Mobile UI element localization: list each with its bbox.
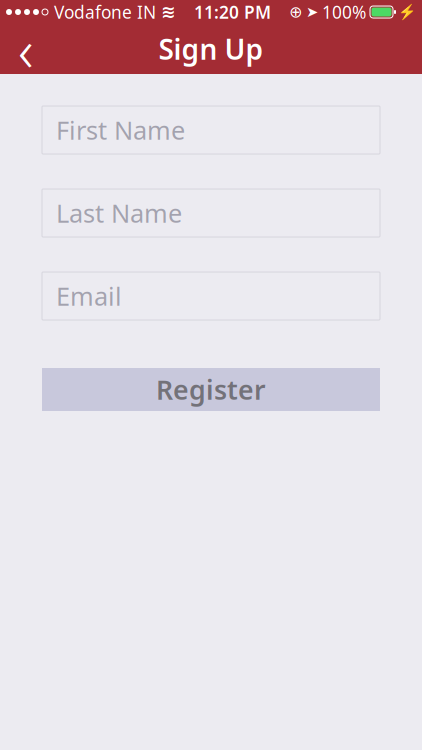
staticText: ➤ xyxy=(306,4,318,20)
staticText: ⊕ xyxy=(289,3,302,21)
staticText: 100% xyxy=(322,0,366,23)
button[interactable]: Back xyxy=(0,24,52,74)
staticText: First Name xyxy=(56,113,185,147)
staticText: Last Name xyxy=(56,196,182,230)
staticText: ⚡ xyxy=(398,4,416,20)
staticText: Register xyxy=(156,372,266,407)
staticText: Sign Up xyxy=(158,30,263,68)
staticText: ‹ xyxy=(18,10,34,88)
staticText: Email xyxy=(56,279,122,313)
button[interactable]: Register xyxy=(42,368,380,411)
staticText: Vodafone IN xyxy=(54,0,156,23)
staticText: 11:20 PM xyxy=(194,0,271,23)
staticText: ≋ xyxy=(161,2,176,22)
